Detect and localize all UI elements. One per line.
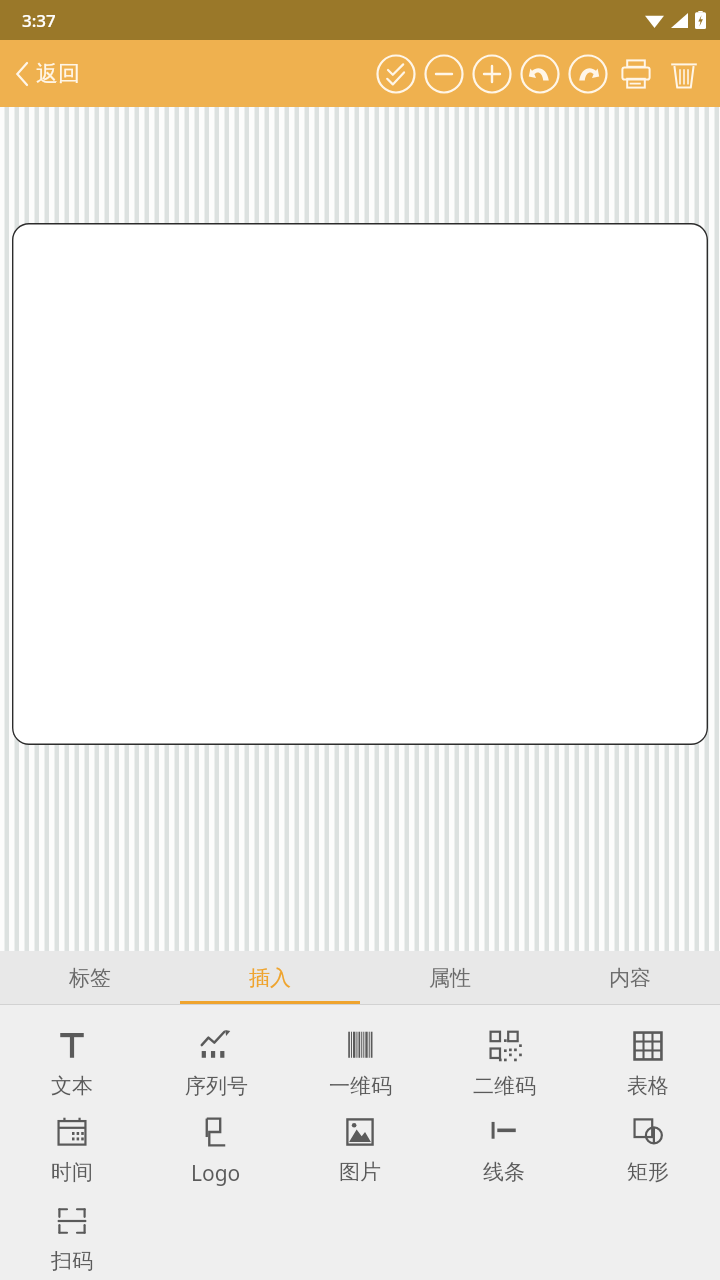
button[interactable]: Zoom out (420, 50, 468, 98)
button[interactable]: 插入 (180, 951, 360, 1005)
button[interactable]: 线条 (432, 1105, 576, 1191)
button[interactable]: 二维码 (432, 1019, 576, 1105)
button[interactable]: 时间 (0, 1105, 144, 1191)
staticText: 图片 (339, 1159, 381, 1185)
staticText: 时间 (51, 1159, 93, 1185)
staticText: 标签 (69, 965, 111, 991)
button[interactable]: 返回 (10, 52, 86, 96)
staticText: 插入 (249, 965, 291, 991)
button[interactable]: Logo (144, 1105, 288, 1194)
staticText: 扫码 (51, 1248, 93, 1274)
staticText: 二维码 (473, 1073, 536, 1099)
staticText: 线条 (483, 1159, 525, 1185)
staticText: 属性 (429, 965, 471, 991)
staticText: 内容 (609, 965, 651, 991)
staticText: 序列号 (185, 1073, 248, 1099)
button[interactable]: Select (372, 50, 420, 98)
button[interactable]: 表格 (576, 1019, 720, 1105)
button[interactable]: 内容 (540, 951, 720, 1005)
button[interactable]: 图片 (288, 1105, 432, 1191)
staticText: 返回 (36, 60, 80, 88)
staticText: 一维码 (329, 1073, 392, 1099)
staticText: Logo (191, 1159, 241, 1188)
button[interactable]: Zoom in (468, 50, 516, 98)
button[interactable]: 文本 (0, 1019, 144, 1105)
staticText: 3:37 (22, 9, 56, 32)
staticText: 表格 (627, 1073, 669, 1099)
staticText: 文本 (51, 1073, 93, 1099)
button[interactable]: 标签 (0, 951, 180, 1005)
button[interactable]: Undo (516, 50, 564, 98)
button[interactable]: Redo (564, 50, 612, 98)
button[interactable]: 矩形 (576, 1105, 720, 1191)
button[interactable]: 扫码 (0, 1194, 144, 1280)
button[interactable]: Delete (660, 50, 708, 98)
button[interactable]: 一维码 (288, 1019, 432, 1105)
button[interactable]: Print (612, 50, 660, 98)
staticText: 矩形 (627, 1159, 669, 1185)
button[interactable]: 序列号 (144, 1019, 288, 1105)
button[interactable] (12, 223, 708, 745)
button[interactable]: 属性 (360, 951, 540, 1005)
